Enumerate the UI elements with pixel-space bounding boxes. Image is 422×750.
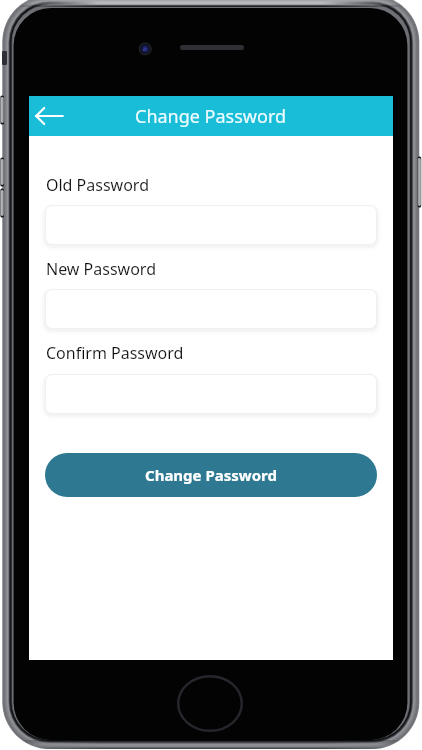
button[interactable] — [41, 285, 381, 337]
staticText: Change Password — [135, 104, 287, 129]
button[interactable] — [41, 370, 381, 422]
button[interactable]: Change Password — [45, 453, 377, 497]
staticText: New Password — [46, 258, 156, 280]
button[interactable]: Back — [29, 96, 69, 136]
button[interactable] — [41, 201, 381, 253]
staticText: Confirm Password — [46, 342, 184, 364]
staticText: Change Password — [145, 465, 277, 485]
staticText: Old Password — [46, 174, 149, 196]
